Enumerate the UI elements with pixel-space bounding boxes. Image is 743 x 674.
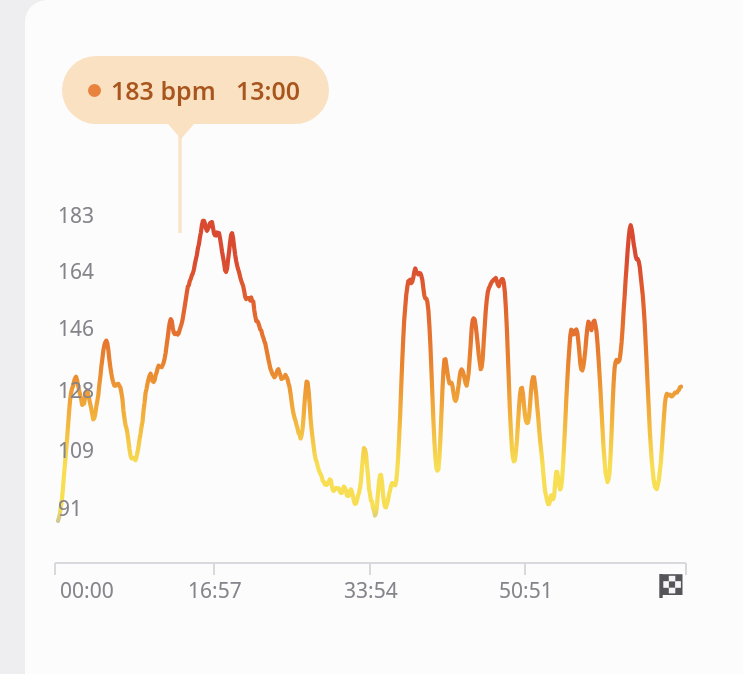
staticText: 109 <box>58 436 95 465</box>
staticText: 16:57 <box>188 576 242 605</box>
staticText: 13:00 <box>236 73 301 107</box>
staticText: 146 <box>58 314 95 343</box>
staticText: 91 <box>58 494 83 523</box>
staticText: 183 bpm <box>111 73 216 107</box>
staticText: 164 <box>58 257 95 286</box>
button[interactable]: Finish <box>655 568 689 602</box>
staticText: 183 <box>58 201 95 230</box>
staticText: 50:51 <box>499 576 553 605</box>
staticText: 00:00 <box>60 576 114 605</box>
staticText: 33:54 <box>344 576 398 605</box>
staticText: 128 <box>58 376 95 405</box>
button[interactable]: 183 bpm <box>62 56 329 124</box>
